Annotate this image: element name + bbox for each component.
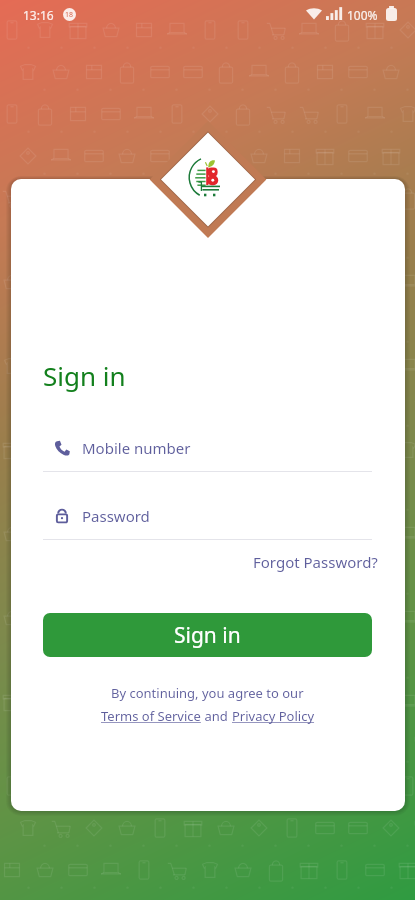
button[interactable]: Terms of Service xyxy=(101,707,201,725)
staticText: Sign in xyxy=(174,621,241,650)
staticText: 13:16 xyxy=(23,7,54,23)
staticText: Password xyxy=(82,506,150,526)
staticText: and xyxy=(201,707,232,725)
staticText: By continuing, you agree to our xyxy=(111,684,304,702)
button[interactable]: Password xyxy=(43,505,372,540)
button[interactable]: Privacy Policy xyxy=(232,707,315,725)
button[interactable]: Sign in xyxy=(43,613,372,657)
staticText: Terms of Service xyxy=(101,707,201,725)
button[interactable]: Mobile number xyxy=(43,437,372,472)
staticText: Mobile number xyxy=(82,438,191,458)
staticText: Sign in xyxy=(43,358,126,393)
staticText: Forgot Password? xyxy=(253,552,378,572)
staticText: 18 xyxy=(65,10,74,20)
staticText: Privacy Policy xyxy=(232,707,315,725)
button[interactable]: Forgot Password? xyxy=(249,549,382,575)
staticText: 100% xyxy=(347,7,378,23)
